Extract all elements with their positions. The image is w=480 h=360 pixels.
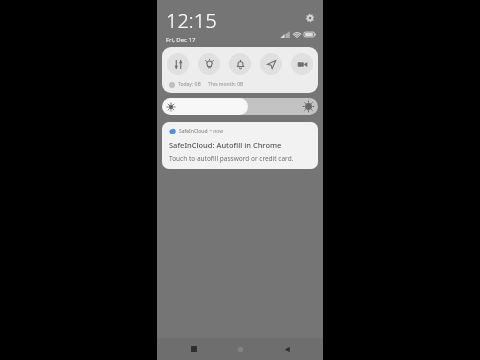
staticText: Fri, Dec 17 xyxy=(166,36,196,44)
button[interactable]: Settings xyxy=(303,11,316,24)
staticText: This month: 0B xyxy=(208,81,244,88)
button[interactable]: Home xyxy=(230,339,250,359)
button[interactable]: Screen recorder xyxy=(291,53,313,75)
button[interactable]: Back xyxy=(277,339,297,359)
button[interactable]: Brightness xyxy=(162,98,318,115)
button[interactable]: Do not disturb xyxy=(229,53,251,75)
staticText: 12:15 xyxy=(166,7,217,34)
button[interactable]: Location xyxy=(260,53,282,75)
button[interactable]: Mobile data xyxy=(167,53,189,75)
staticText: Today: 0B xyxy=(178,81,201,88)
button[interactable]: Recents xyxy=(184,339,204,359)
button[interactable]: Flashlight xyxy=(198,53,220,75)
staticText: • now xyxy=(210,128,224,135)
staticText: SafeInCloud: Autofill in Chrome xyxy=(169,140,282,150)
staticText: SafeInCloud xyxy=(179,128,208,135)
button[interactable]: SafeInCloud xyxy=(162,122,318,169)
staticText: Touch to autofill password or credit car… xyxy=(169,154,294,163)
